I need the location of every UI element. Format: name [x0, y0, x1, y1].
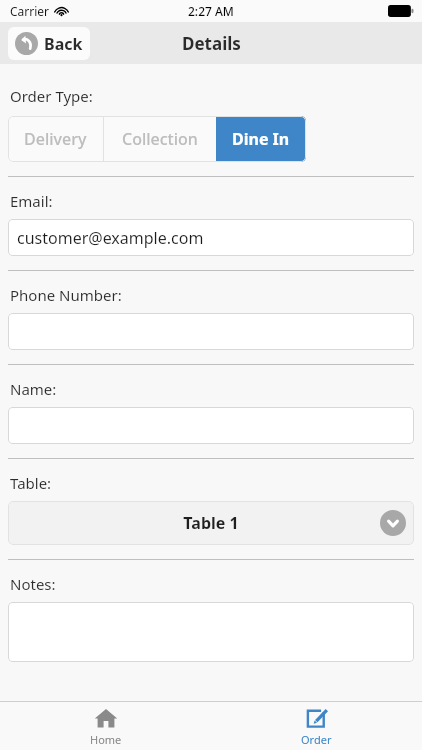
button[interactable]: Delivery: [8, 116, 103, 162]
staticText: Table:: [10, 473, 52, 493]
staticText: Home: [90, 732, 122, 747]
button[interactable]: [8, 407, 414, 444]
button[interactable]: Order: [211, 702, 422, 750]
staticText: Notes:: [10, 574, 56, 594]
button[interactable]: Collection: [104, 116, 216, 162]
staticText: Name:: [10, 379, 57, 399]
staticText: Email:: [10, 191, 53, 211]
staticText: Carrier: [10, 3, 50, 19]
staticText: Table 1: [183, 512, 239, 534]
staticText: customer@example.com: [17, 227, 204, 249]
staticText: Delivery: [24, 128, 87, 150]
staticText: Order: [301, 732, 332, 747]
button[interactable]: Dine In: [216, 116, 306, 162]
button[interactable]: Table 1: [8, 501, 414, 545]
staticText: Order Type:: [10, 86, 93, 106]
button[interactable]: Home: [0, 702, 211, 750]
staticText: Back: [44, 33, 83, 55]
staticText: Dine In: [232, 128, 290, 150]
button[interactable]: customer@example.com: [8, 219, 414, 256]
staticText: Phone Number:: [10, 285, 122, 305]
staticText: Details: [182, 32, 241, 55]
staticText: 2:27 AM: [188, 3, 234, 19]
button[interactable]: [8, 313, 414, 350]
button[interactable]: [8, 602, 414, 662]
other: Select table: [380, 510, 406, 536]
staticText: Collection: [122, 128, 198, 150]
button[interactable]: Back: [8, 27, 90, 60]
